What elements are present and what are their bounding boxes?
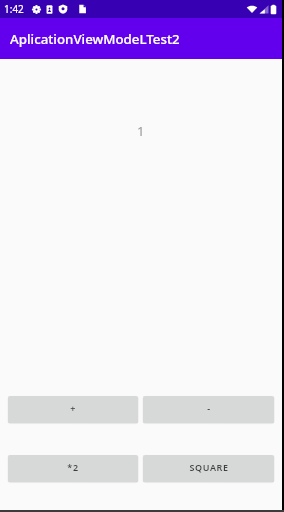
other: Battery	[270, 4, 277, 15]
staticText: -	[207, 402, 211, 414]
other: Contacts	[45, 5, 54, 14]
staticText: *2	[67, 461, 79, 473]
button[interactable]: -	[143, 396, 274, 423]
other: Wi-Fi	[246, 4, 258, 15]
staticText: +	[70, 402, 76, 414]
button[interactable]: +	[8, 396, 138, 423]
button[interactable]: SQUARE	[143, 455, 274, 482]
other: Security	[58, 4, 68, 14]
other: Cellular signal	[259, 4, 269, 15]
other: Settings	[32, 5, 41, 14]
staticText: SQUARE	[189, 461, 229, 473]
staticText: AplicationViewModeLTest2	[10, 30, 180, 48]
staticText: 1	[137, 122, 145, 140]
staticText: 1:42	[4, 2, 24, 16]
other: Document	[78, 4, 87, 14]
button[interactable]: *2	[8, 455, 138, 482]
